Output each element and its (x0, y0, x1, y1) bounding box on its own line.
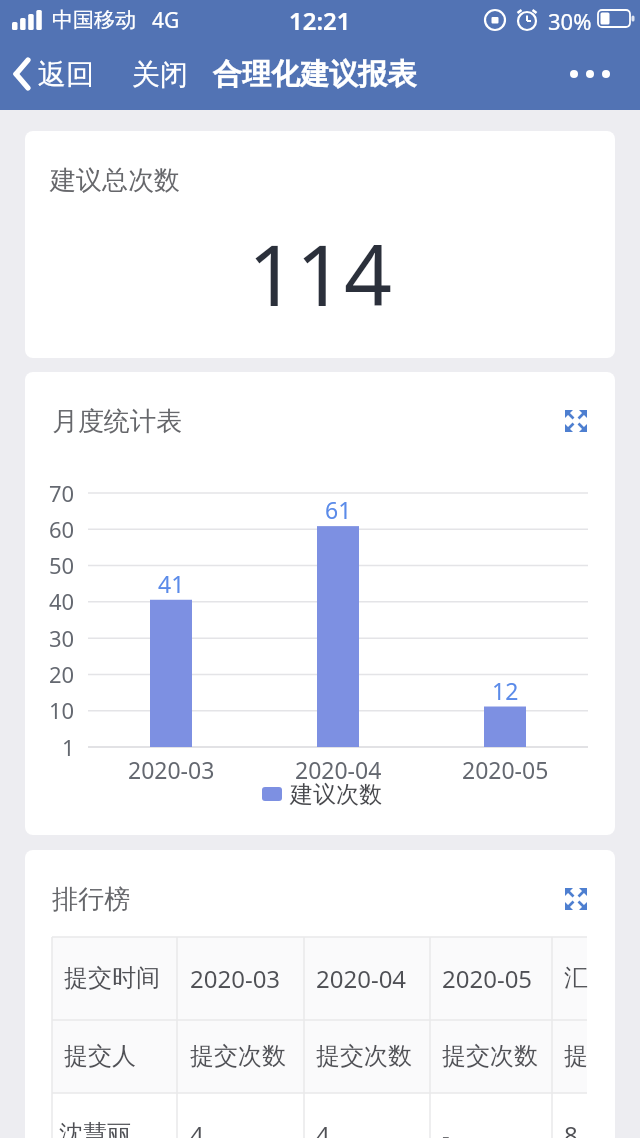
staticText: 12:21 (289, 4, 351, 37)
staticText: 30% (548, 6, 592, 36)
staticText: - (442, 1118, 450, 1138)
staticText: 提交时间 (64, 963, 160, 993)
button[interactable] (563, 886, 589, 912)
staticText: 2020-03 (190, 962, 281, 995)
staticText: 20 (49, 659, 75, 689)
staticText: 30 (49, 623, 75, 653)
button[interactable] (12, 57, 34, 91)
staticText: 提 (564, 1041, 588, 1071)
staticText: 60 (49, 514, 75, 544)
staticText: 关闭 (132, 57, 188, 92)
staticText: 中国移动 (52, 7, 136, 33)
staticText: 40 (49, 586, 75, 616)
staticText: 10 (49, 695, 75, 725)
staticText: 提交次数 (316, 1041, 412, 1071)
staticText: 2020-05 (442, 962, 533, 995)
staticText: 提交人 (64, 1041, 136, 1071)
staticText: 返回 (38, 57, 94, 92)
button[interactable] (566, 62, 616, 86)
staticText: 1 (62, 732, 75, 762)
staticText: 41 (158, 568, 185, 596)
staticText: 提交次数 (442, 1041, 538, 1071)
staticText: 排行榜 (52, 883, 130, 916)
staticText: 建议次数 (290, 780, 382, 809)
staticText: 70 (49, 478, 75, 508)
staticText: 4G (152, 6, 180, 35)
staticText: 月度统计表 (52, 405, 182, 438)
staticText: 8 (564, 1118, 578, 1138)
staticText: 2020-05 (462, 754, 549, 784)
button[interactable] (563, 408, 589, 434)
staticText: 114 (248, 216, 393, 326)
staticText: 61 (325, 494, 352, 522)
staticText: 50 (49, 550, 75, 580)
staticText: 4 (190, 1118, 204, 1138)
staticText: 提交次数 (190, 1041, 286, 1071)
staticText: 汇 (564, 963, 588, 993)
staticText: 12 (492, 675, 519, 703)
staticText: 4 (316, 1118, 330, 1138)
staticText: 2020-04 (316, 962, 407, 995)
staticText: 2020-04 (295, 754, 382, 784)
staticText: 合理化建议报表 (213, 56, 416, 93)
staticText: 沈慧丽 (59, 1119, 131, 1138)
staticText: 2020-03 (128, 754, 215, 784)
staticText: 建议总次数 (50, 164, 180, 197)
